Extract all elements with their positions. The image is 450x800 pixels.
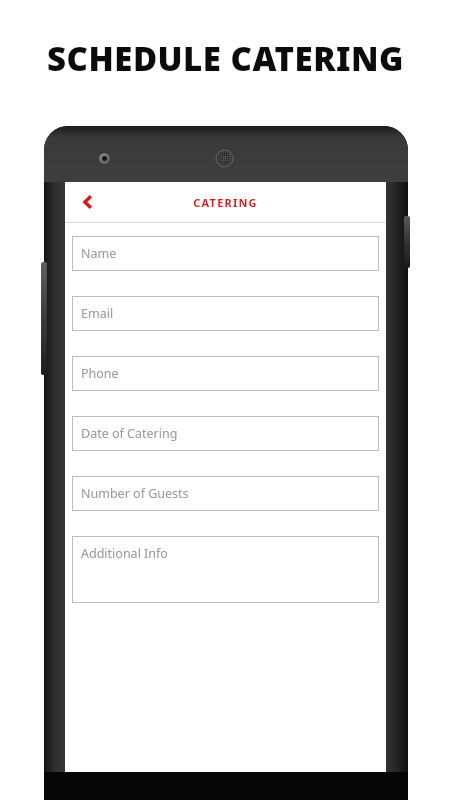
button[interactable]: Name bbox=[72, 236, 379, 271]
staticText: CATERING bbox=[193, 195, 258, 210]
button[interactable]: Back bbox=[71, 185, 105, 219]
button[interactable]: Date of Catering bbox=[72, 416, 379, 451]
staticText: Phone bbox=[81, 365, 119, 382]
staticText: Name bbox=[81, 245, 117, 262]
button[interactable]: Number of Guests bbox=[72, 476, 379, 511]
button[interactable]: Phone bbox=[72, 356, 379, 391]
staticText: Email bbox=[81, 305, 114, 322]
button[interactable]: Email bbox=[72, 296, 379, 331]
staticText: Date of Catering bbox=[81, 425, 178, 442]
staticText: SCHEDULE CATERING bbox=[47, 36, 404, 81]
button[interactable]: Additional Info bbox=[72, 536, 379, 603]
staticText: Number of Guests bbox=[81, 485, 189, 502]
staticText: Additional Info bbox=[81, 545, 168, 562]
